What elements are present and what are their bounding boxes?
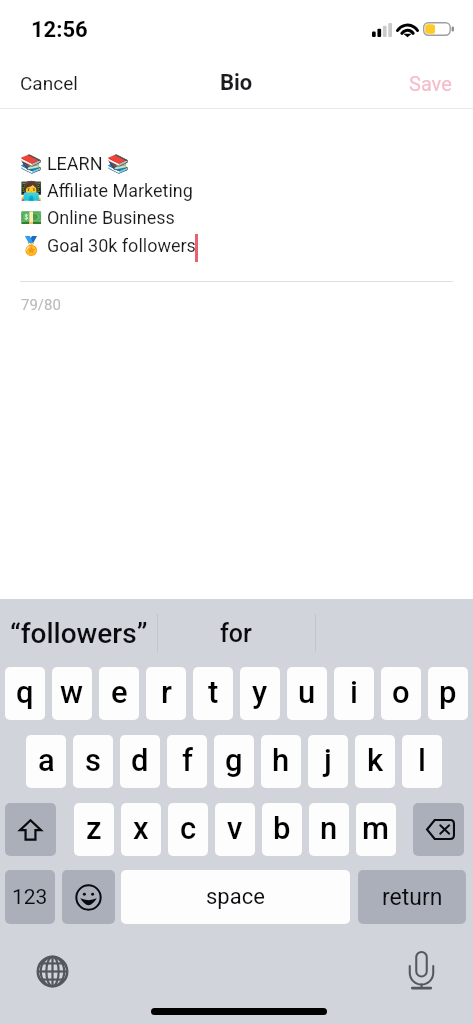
button[interactable]: m [356,803,396,856]
button[interactable]: return [358,870,466,924]
staticText: Cancel [20,72,78,94]
button[interactable]: t [193,667,233,720]
button[interactable]: v [215,803,255,856]
staticText: n [320,810,338,846]
button[interactable]: Dictate [401,950,442,991]
button[interactable]: o [381,667,421,720]
staticText: l [418,742,426,778]
staticText: i [350,674,358,710]
staticText: p [439,674,457,710]
button[interactable]: Emoji [62,870,115,924]
button[interactable]: Switch keyboard [32,951,73,992]
staticText: 👩‍💻 Affiliate Marketing [20,180,193,207]
staticText: 12:56 [31,17,88,43]
staticText: k [367,742,384,778]
staticText: y [252,674,268,710]
button[interactable]: f [167,735,207,788]
button[interactable]: k [355,735,395,788]
button[interactable]: r [146,667,186,720]
button[interactable]: a [26,735,66,788]
button[interactable]: Cancel [0,59,94,107]
button[interactable]: h [261,735,301,788]
staticText: t [208,674,219,710]
staticText: for [220,619,252,648]
staticText: r [161,674,172,710]
button[interactable]: Shift [5,803,56,856]
button[interactable]: z [74,803,114,856]
staticText: e [111,674,128,710]
staticText: 123 [12,885,48,910]
button[interactable]: 123 [5,870,55,924]
button[interactable]: x [121,803,161,856]
staticText: g [225,742,243,778]
button[interactable]: u [287,667,327,720]
button[interactable]: g [214,735,254,788]
staticText: “followers” [10,617,148,650]
staticText: c [180,810,197,846]
staticText: 📚 LEARN 📚 [20,153,130,180]
button[interactable]: Backspace [413,803,464,856]
staticText: f [182,742,193,778]
staticText: s [85,742,101,778]
staticText: a [38,742,55,778]
button[interactable]: p [428,667,468,720]
button[interactable]: j [308,735,348,788]
button[interactable]: w [52,667,92,720]
button[interactable]: d [120,735,160,788]
staticText: v [227,810,243,846]
staticText: x [133,810,149,846]
staticText: space [206,884,265,910]
button[interactable]: q [5,667,45,720]
button[interactable]: i [334,667,374,720]
staticText: o [392,674,410,710]
button[interactable]: “followers” [0,599,157,667]
staticText: z [86,810,102,846]
button[interactable]: for [157,599,315,667]
staticText: return [382,884,443,911]
button[interactable]: space [121,870,350,924]
staticText: d [131,742,149,778]
button[interactable]: b [262,803,302,856]
button[interactable]: n [309,803,349,856]
button[interactable]: l [402,735,442,788]
button[interactable]: e [99,667,139,720]
staticText: b [273,810,291,846]
staticText: 79/80 [21,296,61,314]
staticText: Save [409,72,452,95]
staticText: m [362,810,390,846]
button[interactable]: c [168,803,208,856]
button[interactable]: s [73,735,113,788]
staticText: h [272,742,290,778]
staticText: 💵 Online Business [20,207,175,234]
button[interactable]: Save [393,59,473,108]
staticText: j [324,742,332,778]
staticText: u [298,674,316,710]
button[interactable]: y [240,667,280,720]
staticText: w [60,674,84,710]
staticText: Bio [220,70,253,96]
staticText: q [16,674,34,710]
staticText: 🏅 Goal 30k followers [20,235,196,262]
